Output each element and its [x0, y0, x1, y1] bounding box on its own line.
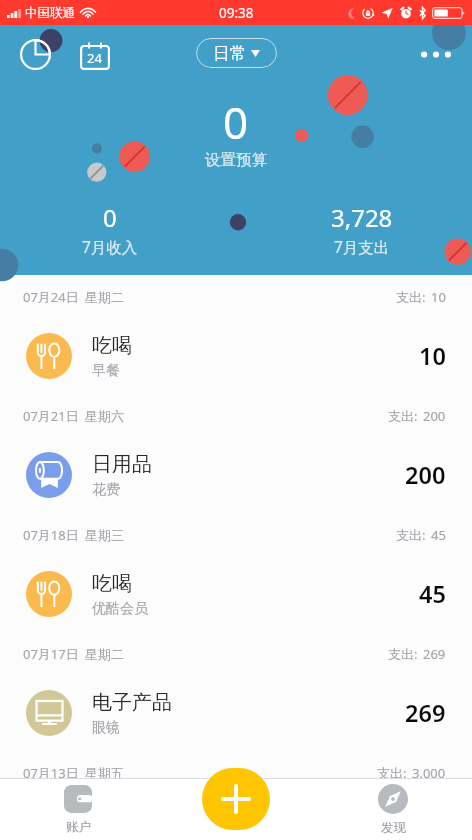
staticText: 星期三	[85, 527, 124, 543]
staticText: 支出:	[388, 645, 418, 663]
button[interactable]: 0	[55, 201, 165, 257]
staticText: 中国联通	[25, 5, 75, 21]
staticText: 45	[419, 578, 446, 610]
staticText: 07月13日	[23, 764, 79, 782]
staticText: 支出:	[377, 764, 407, 782]
staticText: 269	[423, 645, 446, 663]
staticText: 日常	[213, 43, 246, 64]
staticText: 200	[423, 407, 446, 425]
staticText: 吃喝	[92, 333, 132, 358]
staticText: 账户	[66, 819, 91, 835]
staticText: 200	[405, 459, 446, 491]
staticText: 07月24日	[23, 288, 79, 306]
staticText: 星期二	[85, 289, 124, 305]
button[interactable]: 发现	[354, 784, 432, 836]
staticText: 269	[405, 697, 446, 729]
button[interactable]: 吃喝	[0, 318, 472, 394]
staticText: 07月21日	[23, 407, 79, 425]
staticText: 10	[419, 340, 446, 372]
button[interactable]: Calendar	[73, 33, 116, 76]
staticText: 0	[103, 201, 117, 234]
staticText: 发现	[381, 820, 406, 836]
staticText: 10	[431, 288, 446, 306]
staticText: 日用品	[92, 452, 152, 477]
staticText: 45	[431, 526, 446, 544]
staticText: 吃喝	[92, 571, 132, 596]
button[interactable]: Add record	[202, 768, 270, 830]
button[interactable]: More options	[414, 32, 458, 76]
staticText: 早餐	[92, 362, 120, 380]
staticText: 星期二	[85, 646, 124, 662]
staticText: 星期五	[85, 765, 124, 781]
button[interactable]: 账户	[39, 785, 117, 835]
button[interactable]: 设置预算	[197, 148, 275, 172]
staticText: 07月17日	[23, 645, 79, 663]
staticText: 优酷会员	[92, 600, 148, 618]
staticText: 眼镜	[92, 719, 120, 737]
staticText: 花费	[92, 481, 120, 499]
button[interactable]: 日用品	[0, 437, 472, 513]
staticText: 24	[87, 49, 102, 67]
staticText: 3.000	[412, 764, 446, 782]
staticText: 星期六	[85, 408, 124, 424]
staticText: 0	[223, 92, 249, 152]
staticText: 3,728	[331, 201, 393, 234]
button[interactable]: 日常	[196, 38, 277, 68]
button[interactable]: 3,728	[307, 201, 417, 257]
staticText: 电子产品	[92, 690, 172, 715]
button[interactable]: 吃喝	[0, 556, 472, 632]
button[interactable]: Statistics	[14, 33, 57, 76]
staticText: 设置预算	[205, 150, 267, 170]
staticText: 7月支出	[334, 236, 390, 257]
staticText: 支出:	[396, 288, 426, 306]
button[interactable]: 电子产品	[0, 675, 472, 751]
staticText: 07月18日	[23, 526, 79, 544]
staticText: 支出:	[396, 526, 426, 544]
staticText: 09:38	[219, 4, 254, 22]
staticText: 7月收入	[82, 236, 138, 257]
staticText: 支出:	[388, 407, 418, 425]
